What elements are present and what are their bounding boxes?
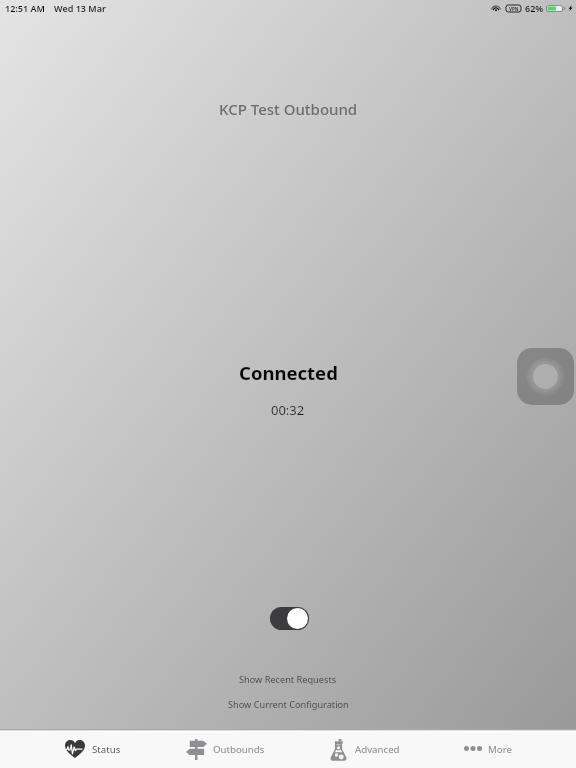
staticText: 12:51 AM [5, 2, 45, 14]
button[interactable]: Show Current Configuration [228, 698, 349, 711]
staticText: Connected [239, 360, 338, 385]
staticText: Wed 13 Mar [54, 2, 106, 14]
staticText: Status [92, 743, 121, 756]
button[interactable]: Advanced [317, 730, 421, 768]
button[interactable]: Show Recent Requests [239, 673, 337, 686]
button[interactable]: Outbounds [172, 730, 276, 768]
button[interactable]: Assistive Touch [517, 348, 574, 405]
staticText: Advanced [355, 743, 400, 756]
staticText: Outbounds [213, 743, 265, 756]
staticText: VPN [509, 6, 519, 12]
staticText: KCP Test Outbound [219, 99, 358, 119]
button[interactable]: More [450, 730, 554, 768]
staticText: More [488, 743, 512, 756]
staticText: 62% [525, 2, 544, 14]
button[interactable]: Status [51, 730, 155, 768]
staticText: 00:32 [271, 401, 305, 419]
button[interactable]: Connection toggle [270, 607, 309, 630]
